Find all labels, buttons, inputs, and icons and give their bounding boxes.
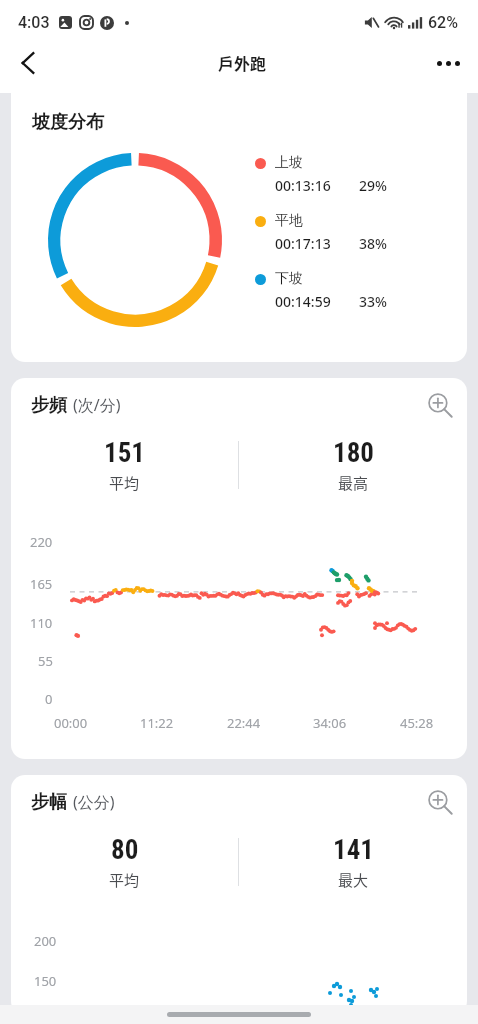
- staticText: (次/分): [73, 394, 121, 416]
- staticText: (公分): [73, 791, 115, 813]
- staticText: 平均: [109, 869, 140, 891]
- staticText: 220: [30, 533, 53, 551]
- staticText: 最高: [338, 472, 369, 494]
- button[interactable]: Zoom in: [427, 392, 453, 418]
- staticText: 下坡: [275, 270, 303, 288]
- staticText: 上坡: [275, 154, 303, 172]
- staticText: 151: [104, 437, 145, 469]
- button[interactable]: Back: [7, 45, 49, 81]
- staticText: 55: [38, 652, 53, 670]
- staticText: 141: [333, 834, 374, 866]
- staticText: 165: [30, 575, 53, 593]
- staticText: 29%: [359, 176, 387, 195]
- button[interactable]: Zoom in: [427, 789, 453, 815]
- staticText: 步幅: [31, 791, 67, 814]
- staticText: 步頻: [31, 394, 67, 417]
- staticText: 38%: [359, 234, 387, 253]
- staticText: 平均: [109, 472, 140, 494]
- staticText: 00:13:16: [275, 176, 331, 195]
- staticText: 戶外跑: [218, 51, 267, 74]
- staticText: 33%: [359, 292, 387, 311]
- staticText: 平地: [275, 212, 303, 230]
- staticText: 00:14:59: [275, 292, 331, 311]
- staticText: 0: [45, 690, 53, 708]
- staticText: 110: [30, 614, 53, 632]
- staticText: 坡度分布: [32, 111, 104, 134]
- staticText: 最大: [338, 869, 369, 891]
- staticText: 200: [34, 932, 57, 950]
- staticText: 4:03: [18, 13, 50, 32]
- staticText: 11:22: [140, 714, 174, 732]
- staticText: 150: [34, 972, 57, 990]
- button[interactable]: More options: [427, 45, 469, 81]
- staticText: 00:00: [54, 714, 88, 732]
- staticText: 00:17:13: [275, 234, 331, 253]
- staticText: 34:06: [313, 714, 347, 732]
- staticText: 22:44: [227, 714, 261, 732]
- staticText: 62%: [428, 13, 458, 32]
- staticText: 45:28: [400, 714, 434, 732]
- staticText: 180: [333, 437, 374, 469]
- staticText: 80: [111, 834, 139, 866]
